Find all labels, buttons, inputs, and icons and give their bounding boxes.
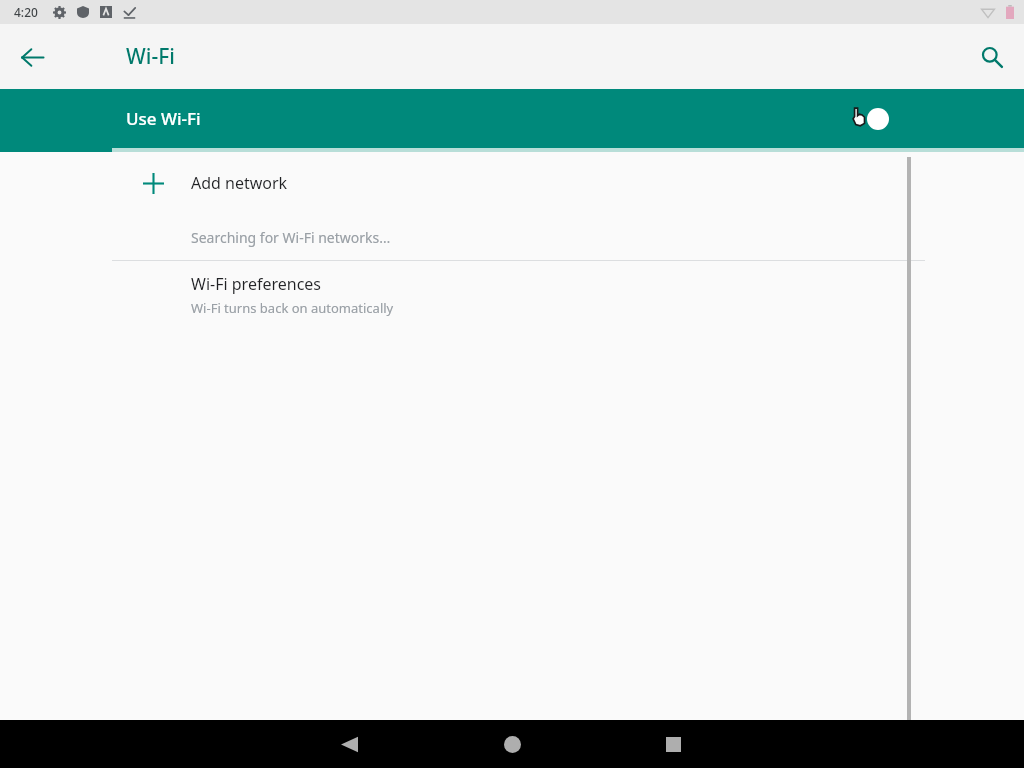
staticText: Searching for Wi-Fi networks… — [191, 228, 391, 247]
button[interactable]: Use Wi-Fi — [0, 89, 1024, 148]
button[interactable]: Home — [488, 720, 536, 768]
button[interactable]: Search — [964, 29, 1020, 85]
button[interactable]: Recent apps — [649, 720, 697, 768]
staticText: Wi-Fi preferences — [191, 273, 322, 295]
staticText: 4:20 — [14, 4, 38, 20]
staticText: Add network — [191, 172, 288, 194]
button[interactable]: Back — [4, 29, 60, 85]
button[interactable]: Wi-Fi preferences — [0, 261, 1024, 329]
staticText: Use Wi-Fi — [126, 107, 201, 130]
button[interactable]: Add network — [0, 152, 1024, 214]
staticText: Wi-Fi turns back on automatically — [191, 299, 394, 317]
staticText: Wi-Fi — [126, 42, 175, 71]
button[interactable]: Back — [325, 720, 373, 768]
